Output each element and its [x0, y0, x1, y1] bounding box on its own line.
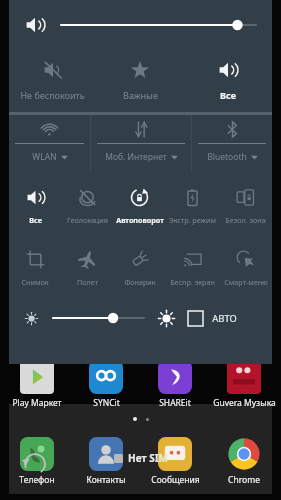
staticText: Автоповорот	[116, 215, 164, 225]
staticText: Телефон	[19, 474, 55, 486]
button[interactable]: Bluetooth	[192, 115, 272, 172]
staticText: Геолокация	[67, 215, 108, 225]
staticText: Моб. Интернет	[105, 151, 167, 163]
staticText: Важные	[123, 89, 158, 101]
staticText: Беспр. экран	[170, 277, 215, 287]
staticText: WLAN	[32, 151, 57, 163]
staticText: Безол. зона	[225, 215, 266, 225]
staticText: Полет	[77, 277, 98, 287]
button[interactable]: WLAN	[9, 115, 90, 172]
button[interactable]: Фонарик	[113, 240, 166, 296]
staticText: Нет SIM	[128, 451, 168, 465]
staticText: SHAREit	[159, 397, 191, 409]
staticText: Все	[220, 89, 236, 101]
button[interactable]: Сообщения	[143, 437, 207, 486]
other: High brightness	[144, 296, 188, 340]
staticText: Экстр. режим	[169, 215, 216, 225]
other: Low brightness	[9, 296, 53, 340]
staticText: Guvera Музыка	[213, 397, 276, 409]
button[interactable]: Беспр. экран	[166, 240, 219, 296]
button[interactable]	[53, 305, 144, 331]
button[interactable]: SYNCit	[74, 360, 138, 409]
button[interactable]: Guvera Музыка	[212, 360, 276, 409]
button[interactable]: Важные	[96, 50, 184, 110]
button[interactable]: Полет	[61, 240, 113, 296]
button[interactable]: Контакты	[74, 437, 138, 486]
button[interactable]: Смарт-меню	[219, 240, 272, 296]
button[interactable]: Chrome	[212, 437, 276, 486]
staticText: АВТО	[212, 312, 237, 325]
button[interactable]: Volume	[9, 0, 272, 50]
button[interactable]: Моб. Интернет	[91, 115, 191, 172]
button[interactable]: SHAREit	[143, 360, 207, 409]
other: Volume	[9, 0, 61, 50]
button[interactable]: Снимок	[9, 240, 61, 296]
button[interactable]: Телефон	[5, 437, 69, 486]
button[interactable]: Геолокация	[61, 178, 113, 234]
button[interactable]: Все	[184, 50, 272, 110]
button[interactable]: Безол. зона	[219, 178, 272, 234]
staticText: SYNCit	[93, 397, 120, 409]
button[interactable]: Не беспокоить	[9, 50, 96, 110]
button[interactable]: Все	[9, 178, 61, 234]
staticText: Контакты	[86, 474, 126, 486]
staticText: Не беспокоить	[20, 89, 85, 101]
staticText: Chrome	[228, 474, 260, 486]
button[interactable]: АВТО	[188, 296, 272, 340]
button[interactable]: Автоповорот	[113, 178, 166, 234]
staticText: Фонарик	[124, 277, 156, 287]
button[interactable]: Экстр. режим	[166, 178, 219, 234]
staticText: Play Маркет	[12, 397, 62, 409]
staticText: Все	[29, 215, 42, 225]
button[interactable]: Play Маркет	[5, 360, 69, 409]
staticText: Bluetooth	[207, 151, 247, 163]
staticText: Сообщения	[151, 474, 200, 486]
staticText: Снимок	[21, 277, 49, 287]
staticText: Смарт-меню	[224, 277, 268, 287]
other: Back	[22, 451, 48, 477]
